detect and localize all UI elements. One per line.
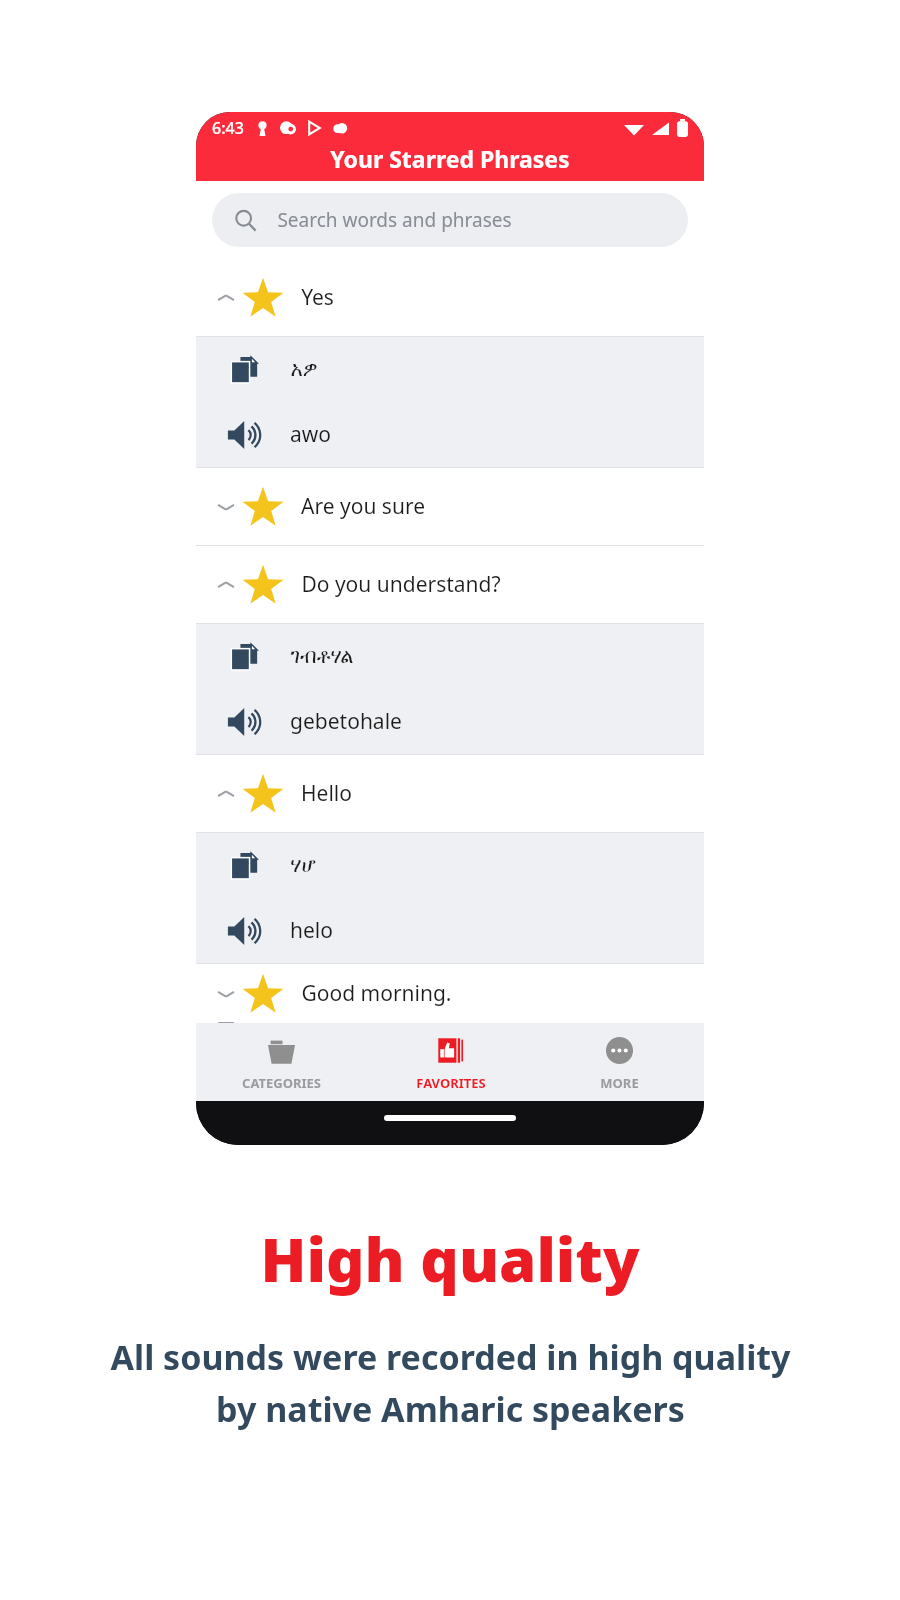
staticText: High quality [260,1218,640,1300]
button[interactable]: CATEGORIES [196,1023,366,1101]
button[interactable]: Play pronunciation [196,402,704,467]
staticText: Search words and phrases [277,207,512,233]
button[interactable]: Play pronunciation [196,689,704,754]
button[interactable]: Copy text [196,833,704,898]
staticText: awo [290,420,331,449]
staticText: Hello [301,779,352,808]
staticText: ሃሆ [290,855,316,876]
button[interactable]: Copy text [196,624,704,689]
button[interactable]: MORE [535,1023,704,1101]
button[interactable]: Do you understand? [196,546,704,623]
button[interactable]: Search [212,193,688,247]
staticText: by native Amharic speakers [216,1386,685,1432]
button[interactable]: Yes [196,259,704,336]
button[interactable]: Copy text [196,337,704,402]
staticText: All sounds were recorded in high quality [110,1334,791,1380]
staticText: helo [290,916,333,945]
staticText: አዎ [290,359,318,380]
staticText: FAVORITES [416,1074,486,1092]
other: Search [234,209,257,232]
button[interactable]: Hello [196,755,704,832]
staticText: Do you understand? [301,570,501,599]
staticText: ገብቶሃል [290,646,354,667]
staticText: 6:43 [212,117,244,139]
staticText: Your Starred Phrases [330,143,570,174]
staticText: MORE [600,1074,639,1092]
button[interactable]: FAVORITES [366,1023,535,1101]
staticText: Are you sure [301,492,425,521]
button[interactable]: Play pronunciation [196,898,704,963]
button[interactable]: Good morning. [196,964,704,1023]
staticText: Good morning. [301,979,452,1008]
staticText: Yes [301,283,334,312]
button[interactable]: Are you sure [196,468,704,545]
staticText: gebetohale [290,707,402,736]
staticText: CATEGORIES [242,1074,321,1092]
